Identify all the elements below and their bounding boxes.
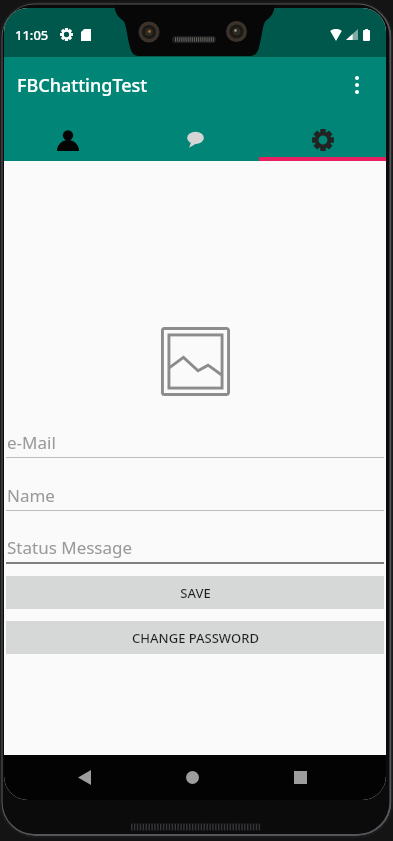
- staticText: Status Message: [7, 536, 133, 559]
- staticText: 11:05: [15, 26, 49, 44]
- staticText: CHANGE PASSWORD: [132, 629, 259, 647]
- button[interactable]: Chats: [132, 113, 259, 161]
- staticText: e-Mail: [7, 431, 56, 454]
- button[interactable]: Settings: [259, 113, 386, 161]
- button[interactable]: SAVE: [6, 576, 384, 609]
- button[interactable]: Recents: [277, 755, 323, 800]
- button[interactable]: Friends: [4, 113, 132, 161]
- button[interactable]: Name: [6, 484, 384, 511]
- staticText: Name: [7, 484, 55, 507]
- staticText: SAVE: [180, 584, 211, 602]
- staticText: FBChattingTest: [17, 73, 148, 98]
- button[interactable]: CHANGE PASSWORD: [6, 621, 384, 654]
- button[interactable]: Back: [61, 755, 107, 800]
- button[interactable]: Status Message: [6, 536, 384, 564]
- button[interactable]: e-Mail: [6, 431, 384, 458]
- button[interactable]: Home: [169, 755, 215, 800]
- button[interactable]: More options: [333, 61, 381, 109]
